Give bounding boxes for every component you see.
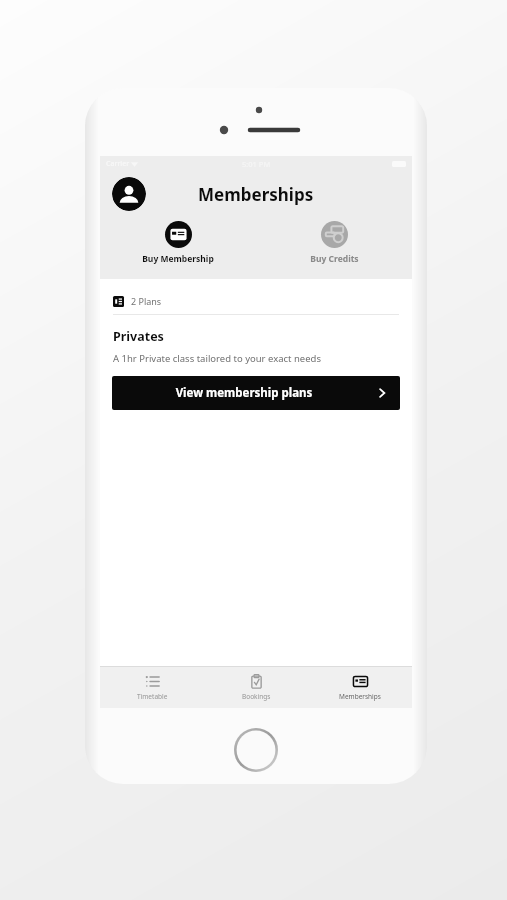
staticText: Bookings xyxy=(242,692,271,701)
staticText: Privates xyxy=(113,328,164,345)
staticText: A 1hr Private class tailored to your exa… xyxy=(113,352,321,365)
button[interactable]: Buy Membership xyxy=(100,217,256,269)
button[interactable]: 2 Plans xyxy=(100,288,412,314)
staticText: Carrier xyxy=(106,159,130,169)
staticText: Timetable xyxy=(137,692,168,701)
staticText: Buy Credits xyxy=(310,253,359,265)
staticText: 2 Plans xyxy=(131,295,162,307)
button[interactable]: Bookings xyxy=(204,667,308,708)
button[interactable]: Home xyxy=(234,728,278,772)
staticText: View membership plans xyxy=(112,385,376,401)
button[interactable]: Timetable xyxy=(100,667,204,708)
button[interactable]: View membership plans xyxy=(112,376,400,410)
button[interactable]: Buy Credits xyxy=(256,217,412,269)
staticText: Buy Membership xyxy=(142,253,214,265)
staticText: Memberships xyxy=(198,183,314,206)
button[interactable]: Memberships xyxy=(308,667,412,708)
button[interactable]: Profile xyxy=(112,177,146,211)
staticText: Memberships xyxy=(339,692,381,701)
